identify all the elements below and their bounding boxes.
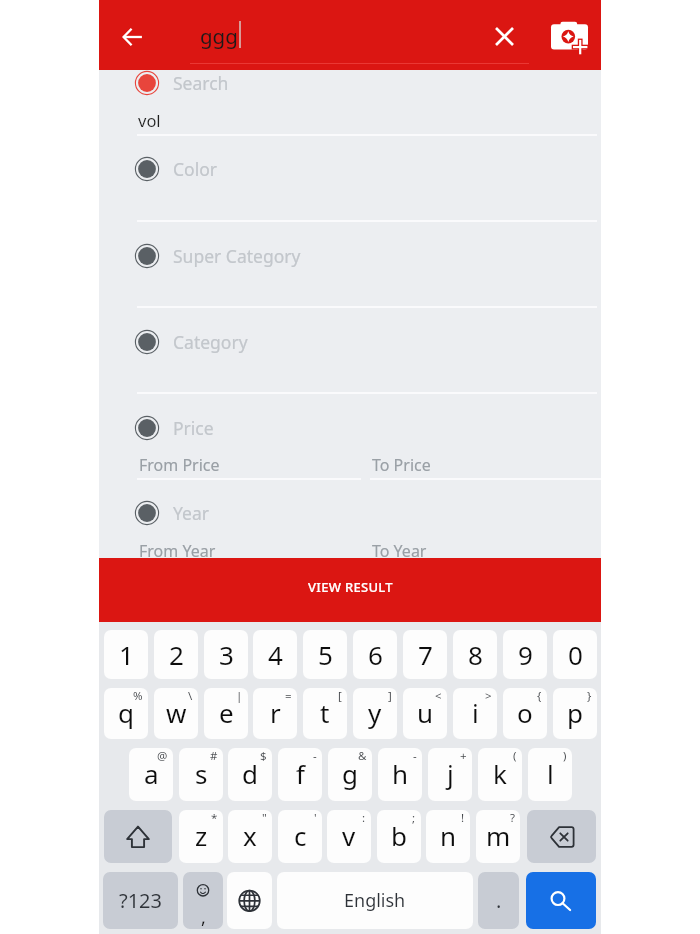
- button[interactable]: Search with camera: [547, 14, 593, 60]
- staticText: o: [517, 695, 533, 730]
- staticText: d: [242, 756, 258, 791]
- staticText: $: [260, 748, 267, 764]
- button[interactable]: Category: [99, 318, 601, 366]
- staticText: %: [133, 688, 143, 704]
- button[interactable]: u: [403, 688, 447, 739]
- staticText: x: [243, 818, 257, 853]
- staticText: b: [391, 818, 407, 853]
- button[interactable]: Search: [99, 59, 601, 107]
- button[interactable]: 6: [353, 630, 397, 679]
- button[interactable]: 4: [253, 630, 297, 679]
- staticText: 0: [568, 637, 583, 672]
- button[interactable]: q: [104, 688, 148, 739]
- staticText: vol: [138, 109, 161, 131]
- button[interactable]: Shift: [104, 810, 172, 863]
- staticText: 3: [219, 637, 234, 672]
- button[interactable]: Color: [99, 145, 601, 193]
- staticText: h: [392, 756, 409, 791]
- button[interactable]: Back: [110, 14, 156, 60]
- button[interactable]: g: [328, 748, 372, 801]
- button[interactable]: e: [204, 688, 248, 739]
- button[interactable]: d: [228, 748, 272, 801]
- button[interactable]: English: [277, 872, 473, 929]
- button[interactable]: ?123: [103, 872, 178, 929]
- staticText: !: [461, 810, 465, 826]
- staticText: }: [587, 688, 592, 704]
- button[interactable]: 1: [104, 630, 148, 679]
- button[interactable]: 8: [453, 630, 497, 679]
- button[interactable]: t: [303, 688, 347, 739]
- staticText: r: [270, 695, 281, 730]
- staticText: 6: [368, 637, 383, 672]
- button[interactable]: o: [503, 688, 547, 739]
- button[interactable]: p: [553, 688, 597, 739]
- staticText: 7: [418, 637, 433, 672]
- button[interactable]: Clear query: [481, 13, 527, 59]
- button[interactable]: Search: [526, 872, 596, 929]
- staticText: a: [144, 756, 159, 791]
- staticText: (: [513, 748, 517, 764]
- button[interactable]: s: [179, 748, 223, 801]
- button[interactable]: v: [327, 810, 371, 863]
- button[interactable]: x: [228, 810, 272, 863]
- staticText: VIEW RESULT: [308, 578, 393, 596]
- staticText: c: [294, 818, 307, 853]
- button[interactable]: i: [453, 688, 497, 739]
- button[interactable]: Emoji: [183, 872, 223, 929]
- staticText: l: [547, 756, 554, 791]
- staticText: 1: [119, 637, 134, 672]
- staticText: e: [219, 695, 234, 730]
- button[interactable]: 7: [403, 630, 447, 679]
- button[interactable]: 9: [503, 630, 547, 679]
- button[interactable]: f: [278, 748, 322, 801]
- button[interactable]: k: [478, 748, 522, 801]
- button[interactable]: Year: [99, 489, 601, 537]
- staticText: Super Category: [173, 244, 301, 268]
- staticText: -: [413, 748, 417, 764]
- button[interactable]: 0: [553, 630, 597, 679]
- button[interactable]: Change language: [227, 872, 272, 929]
- button[interactable]: a: [129, 748, 173, 801]
- staticText: k: [493, 756, 507, 791]
- button[interactable]: .: [478, 872, 519, 929]
- button[interactable]: Price: [99, 404, 601, 452]
- staticText: +: [460, 748, 467, 764]
- button[interactable]: b: [377, 810, 421, 863]
- button[interactable]: VIEW RESULT: [99, 558, 601, 622]
- button[interactable]: h: [378, 748, 422, 801]
- staticText: 4: [268, 637, 283, 672]
- staticText: ,: [201, 905, 206, 929]
- button[interactable]: Backspace: [527, 810, 596, 863]
- staticText: u: [417, 695, 434, 730]
- staticText: Price: [173, 416, 214, 440]
- staticText: m: [486, 818, 511, 853]
- staticText: *: [211, 810, 218, 826]
- staticText: 5: [318, 637, 333, 672]
- staticText: w: [166, 695, 187, 730]
- button[interactable]: 2: [154, 630, 198, 679]
- staticText: 9: [518, 637, 533, 672]
- staticText: @: [157, 748, 168, 764]
- staticText: t: [320, 695, 330, 730]
- button[interactable]: w: [154, 688, 198, 739]
- button[interactable]: n: [426, 810, 470, 863]
- staticText: -: [313, 748, 317, 764]
- staticText: .: [496, 887, 502, 914]
- staticText: |: [236, 688, 243, 704]
- staticText: From Price: [139, 454, 220, 476]
- button[interactable]: r: [253, 688, 297, 739]
- staticText: Year: [173, 501, 209, 525]
- button[interactable]: y: [353, 688, 397, 739]
- button[interactable]: j: [428, 748, 472, 801]
- button[interactable]: 3: [204, 630, 248, 679]
- staticText: {: [537, 688, 542, 704]
- button[interactable]: m: [476, 810, 520, 863]
- button[interactable]: 5: [303, 630, 347, 679]
- button[interactable]: Super Category: [99, 232, 601, 280]
- button[interactable]: l: [528, 748, 572, 801]
- staticText: ': [314, 810, 317, 826]
- staticText: ?123: [119, 887, 162, 914]
- staticText: &: [358, 748, 367, 764]
- button[interactable]: c: [278, 810, 322, 863]
- button[interactable]: z: [179, 810, 223, 863]
